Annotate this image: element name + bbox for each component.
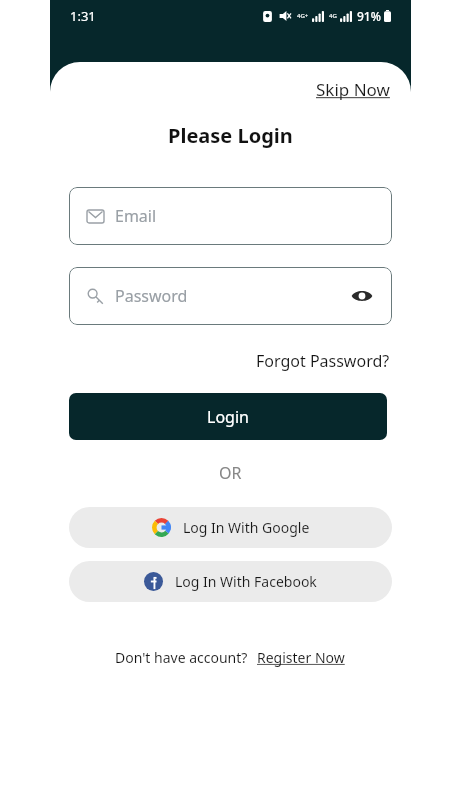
staticText: 4G bbox=[329, 12, 337, 20]
button[interactable]: Log In With Google bbox=[69, 507, 392, 548]
staticText: Register Now bbox=[257, 648, 345, 667]
staticText: Login bbox=[207, 406, 249, 428]
staticText: Log In With Facebook bbox=[175, 572, 317, 591]
staticText: 91% bbox=[357, 8, 381, 24]
staticText: Skip Now bbox=[316, 78, 390, 101]
staticText: 1:31 bbox=[70, 7, 96, 25]
staticText: Log In With Google bbox=[183, 518, 310, 537]
staticText: Email bbox=[115, 205, 157, 227]
staticText: OR bbox=[219, 462, 242, 484]
staticText: Password bbox=[115, 285, 188, 307]
button[interactable]: Login bbox=[69, 393, 387, 440]
button[interactable]: Password bbox=[69, 267, 392, 325]
button[interactable]: Skip Now bbox=[314, 74, 392, 105]
button[interactable]: Log In With Facebook bbox=[69, 561, 392, 602]
button[interactable]: Register Now bbox=[256, 645, 346, 670]
button[interactable]: Forgot Password? bbox=[254, 347, 392, 375]
staticText: Don't have account? bbox=[115, 648, 248, 667]
staticText: 4G+ bbox=[297, 12, 309, 20]
staticText: Forgot Password? bbox=[256, 350, 390, 372]
button[interactable]: Email bbox=[69, 187, 392, 245]
button[interactable]: Show password bbox=[348, 282, 376, 310]
staticText: Please Login bbox=[168, 122, 293, 149]
